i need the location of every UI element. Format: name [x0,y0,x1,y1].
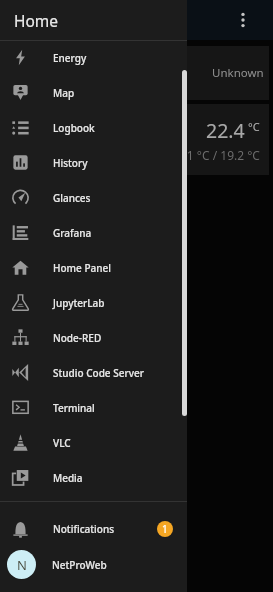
staticText: 31 °C / 19.2 °C [180,147,260,163]
staticText: Home [14,10,59,31]
staticText: Notifications [53,522,115,536]
staticText: Logbook [53,121,95,135]
staticText: Studio Code Server [53,366,144,380]
button[interactable]: N [0,548,187,581]
staticText: VLC [53,436,71,450]
button[interactable]: Node-RED [0,322,187,357]
button[interactable]: Home Panel [0,252,187,287]
button[interactable]: Map [0,77,187,112]
staticText: NetProWeb [52,558,107,572]
button[interactable]: Media [0,462,187,497]
button[interactable]: Logbook [0,112,187,147]
staticText: Grafana [53,226,92,240]
staticText: Terminal [53,401,95,415]
staticText: N [17,556,27,574]
staticText: 1 [162,522,168,536]
button[interactable]: Terminal [0,392,187,427]
staticText: Map [53,86,75,100]
staticText: 22.4 [206,117,245,144]
staticText: °C [248,119,260,134]
staticText: Node-RED [53,331,102,345]
button[interactable]: JupyterLab [0,287,187,322]
button[interactable]: More options [230,7,256,33]
button[interactable]: History [0,147,187,182]
staticText: Energy [53,51,87,65]
staticText: Media [53,471,83,485]
staticText: Home Panel [53,261,111,275]
button[interactable]: Energy [0,42,187,77]
staticText: Glances [53,191,91,205]
button[interactable]: Glances [0,182,187,217]
staticText: JupyterLab [53,296,105,310]
staticText: Unknown [212,65,264,81]
button[interactable]: VLC [0,427,187,462]
button[interactable]: Notifications [0,502,187,548]
button[interactable]: Grafana [0,217,187,252]
button[interactable]: Studio Code Server [0,357,187,392]
staticText: History [53,156,88,170]
